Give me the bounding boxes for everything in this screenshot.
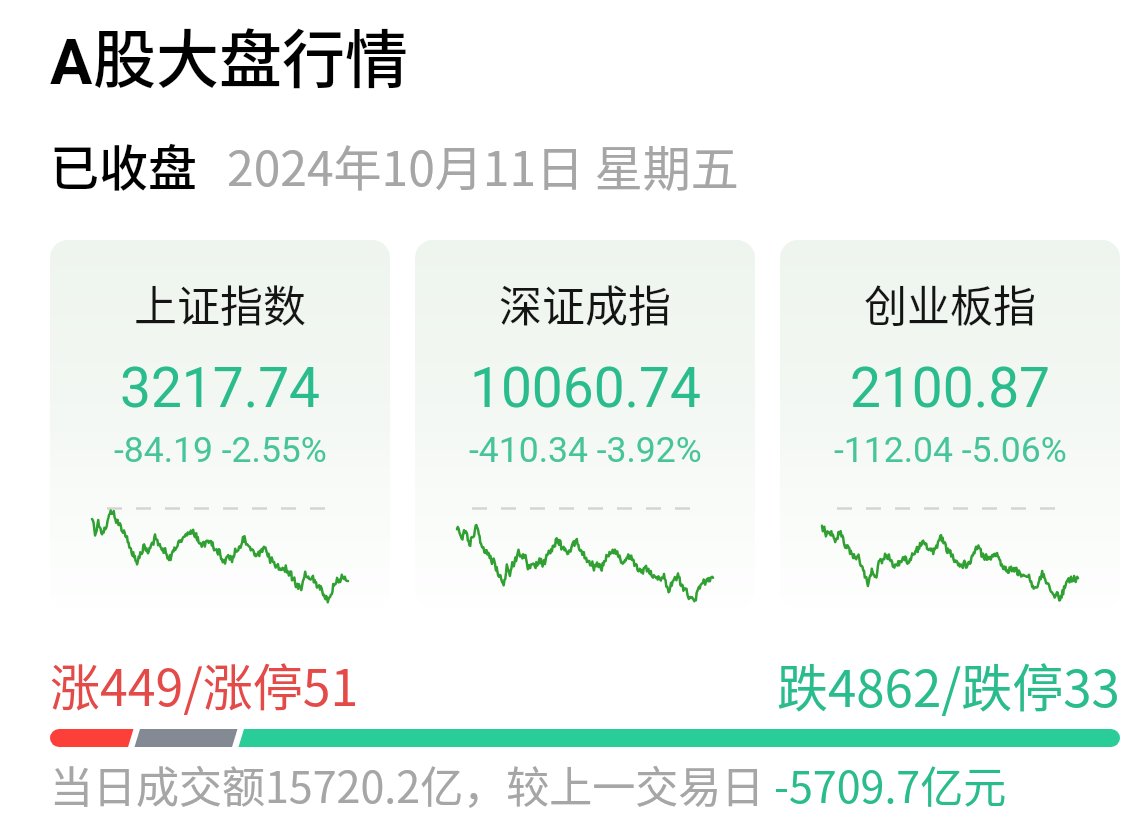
staticText: 深证成指 [499,272,671,334]
staticText: -5709.7亿元 [774,753,1007,815]
button[interactable]: 上证指数 [50,240,390,608]
staticText: -84.19 -2.55% [114,429,327,471]
staticText: 涨449/涨停51 [50,648,359,720]
staticText: 2100.87 [850,356,1050,420]
staticText: 当日成交额15720.2亿，较上一交易日 [50,753,774,815]
staticText: 创业板指 [864,272,1036,334]
staticText: 上证指数 [134,272,306,334]
staticText: 3217.74 [120,356,320,420]
staticText: -410.34 -3.92% [469,429,702,471]
staticText: 已收盘 [50,129,198,200]
button[interactable]: 创业板指 [780,240,1120,608]
staticText: 10060.74 [470,356,701,420]
staticText: A [50,26,93,100]
staticText: 股大盘行情 [93,9,408,100]
staticText: 2024年10月11日 星期五 [227,130,739,200]
staticText: 跌4862/跌停33 [777,648,1120,722]
button[interactable]: A [50,9,408,100]
button[interactable]: 深证成指 [415,240,755,608]
staticText: -112.04 -5.06% [834,429,1067,471]
